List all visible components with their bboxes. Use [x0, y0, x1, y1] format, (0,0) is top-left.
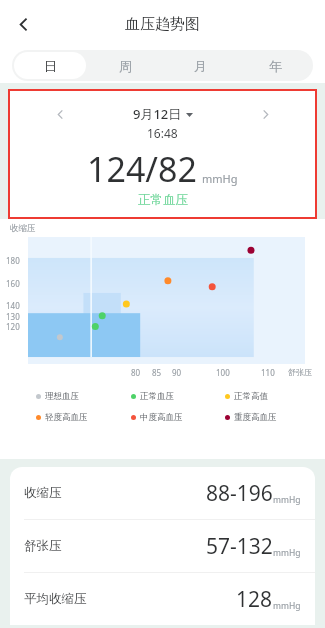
- button[interactable]: 轻度高血压: [36, 412, 131, 423]
- staticText: 128: [236, 585, 273, 614]
- button[interactable]: 正常血压: [131, 391, 225, 402]
- staticText: 140: [6, 300, 20, 311]
- staticText: mmHg: [273, 494, 301, 506]
- staticText: 57-132: [206, 532, 273, 561]
- staticText: 收缩压: [24, 485, 206, 501]
- button[interactable]: 周: [90, 52, 161, 79]
- staticText: 舒张压: [288, 367, 312, 377]
- staticText: 理想血压: [45, 391, 79, 402]
- staticText: 90: [172, 367, 182, 378]
- staticText: 正常血压: [138, 192, 188, 208]
- button[interactable]: 重度高血压: [225, 412, 319, 423]
- button[interactable]: 平均收缩压: [10, 573, 315, 625]
- staticText: 130: [6, 311, 20, 322]
- button[interactable]: 舒张压: [10, 520, 315, 573]
- button[interactable]: 中度高血压: [131, 412, 225, 423]
- button[interactable]: 收缩压: [10, 467, 315, 520]
- staticText: 年: [269, 58, 282, 74]
- staticText: 重度高血压: [234, 412, 277, 423]
- staticText: 160: [6, 278, 20, 289]
- staticText: mmHg: [202, 171, 238, 186]
- staticText: 月: [194, 58, 207, 74]
- staticText: 85: [152, 367, 162, 378]
- staticText: 轻度高血压: [45, 412, 88, 423]
- staticText: 180: [6, 255, 20, 266]
- staticText: 日: [44, 58, 57, 74]
- staticText: 16:48: [147, 125, 178, 141]
- button[interactable]: Back: [4, 5, 42, 43]
- staticText: 80: [131, 367, 141, 378]
- button[interactable]: 年: [240, 52, 311, 79]
- staticText: 124/82: [87, 146, 197, 192]
- staticText: mmHg: [273, 600, 301, 612]
- button[interactable]: 理想血压: [36, 391, 131, 402]
- button[interactable]: 正常高值: [225, 391, 319, 402]
- staticText: 正常高值: [234, 391, 268, 402]
- staticText: 周: [119, 58, 132, 74]
- button[interactable]: 月: [165, 52, 236, 79]
- button[interactable]: Previous day: [50, 104, 70, 124]
- staticText: 88-196: [206, 479, 273, 508]
- staticText: 平均收缩压: [24, 591, 236, 607]
- staticText: 舒张压: [24, 538, 206, 554]
- button[interactable]: 9月12日: [70, 105, 255, 123]
- staticText: 收缩压: [10, 223, 36, 234]
- staticText: mmHg: [273, 547, 301, 559]
- button[interactable]: Next day: [255, 104, 275, 124]
- staticText: 100: [216, 367, 230, 378]
- staticText: 120: [6, 321, 20, 332]
- button[interactable]: 日: [14, 52, 86, 79]
- staticText: 正常血压: [140, 391, 174, 402]
- staticText: 中度高血压: [140, 412, 183, 423]
- staticText: 110: [261, 367, 275, 378]
- staticText: 血压趋势图: [125, 15, 200, 34]
- staticText: 9月12日: [133, 105, 182, 123]
